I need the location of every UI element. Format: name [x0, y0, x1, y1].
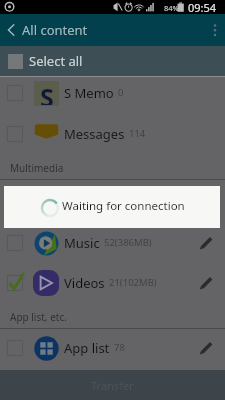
- staticText: 52(386MB): [104, 236, 152, 249]
- staticText: 84%: [164, 3, 179, 13]
- button[interactable]: Messages: [0, 113, 225, 154]
- staticText: S: [40, 80, 54, 105]
- staticText: Multimedia: [10, 161, 64, 175]
- staticText: Messages: [64, 125, 125, 143]
- staticText: Images: [64, 193, 110, 211]
- staticText: 21(102MB): [109, 276, 157, 289]
- staticText: 300: [114, 195, 131, 208]
- staticText: Videos: [64, 274, 105, 292]
- staticText: Music: [64, 234, 100, 252]
- button[interactable]: Edit: [193, 230, 219, 256]
- staticText: Transfer: [91, 378, 134, 393]
- button[interactable]: App list: [0, 327, 225, 368]
- button[interactable]: Videos: [0, 262, 225, 303]
- staticText: App list: [64, 339, 110, 357]
- button[interactable]: S: [0, 72, 225, 113]
- button[interactable]: Edit: [193, 270, 219, 296]
- button[interactable]: More options: [205, 14, 225, 46]
- staticText: 0: [118, 86, 124, 99]
- button[interactable]: Music: [0, 222, 225, 263]
- staticText: App list, etc.: [10, 310, 67, 324]
- staticText: Select all: [29, 52, 83, 70]
- staticText: 114: [129, 127, 146, 140]
- staticText: 09:54: [188, 0, 217, 14]
- button[interactable]: Edit: [193, 335, 219, 361]
- other: Back: [0, 14, 22, 46]
- staticText: S Memo: [64, 84, 114, 102]
- staticText: 78: [114, 341, 125, 354]
- button[interactable]: Back: [0, 14, 225, 46]
- button[interactable]: Select all: [0, 46, 225, 76]
- staticText: All content: [22, 21, 88, 39]
- staticText: Waiting for connection: [62, 198, 185, 214]
- button[interactable]: Images: [0, 181, 225, 222]
